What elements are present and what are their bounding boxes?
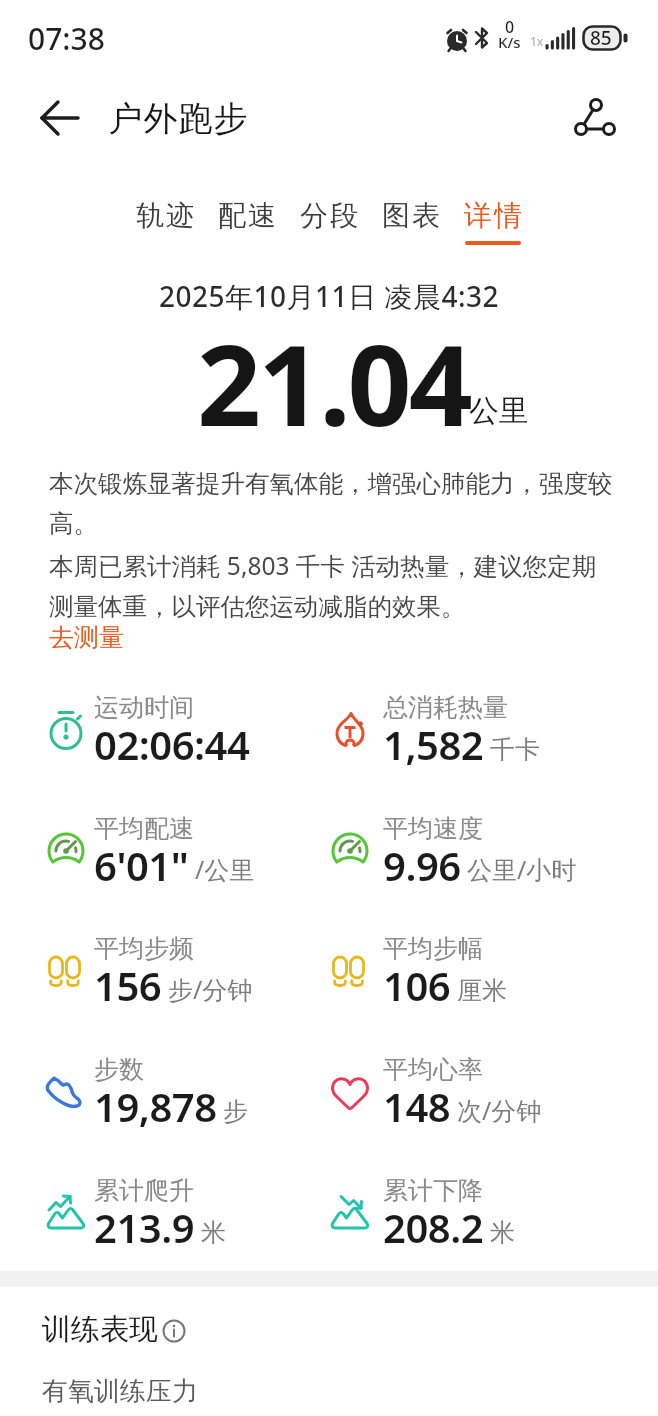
staticText: 平均步幅 bbox=[383, 933, 483, 964]
staticText: 6'01" bbox=[94, 838, 189, 892]
staticText: 步 bbox=[223, 1096, 248, 1127]
staticText: 步/分钟 bbox=[168, 972, 253, 1006]
staticText: 米 bbox=[490, 1217, 515, 1248]
staticText: 21.04 bbox=[197, 306, 470, 459]
staticText: 厘米 bbox=[457, 975, 507, 1006]
staticText: 平均步频 bbox=[94, 933, 194, 964]
button[interactable]: 去测量 bbox=[49, 622, 124, 653]
staticText: 2025年10月11日 凌晨4:32 bbox=[159, 277, 500, 315]
staticText: 公里 bbox=[469, 392, 529, 430]
staticText: 分段 bbox=[299, 198, 359, 233]
button[interactable]: 轨迹 bbox=[135, 198, 195, 245]
button[interactable] bbox=[566, 90, 622, 146]
staticText: 平均速度 bbox=[383, 813, 483, 844]
staticText: 公里/小时 bbox=[467, 852, 577, 886]
staticText: 累计下降 bbox=[383, 1175, 483, 1206]
button[interactable]: 图表 bbox=[381, 198, 441, 245]
staticText: 19,878 bbox=[94, 1079, 217, 1133]
staticText: 次/分钟 bbox=[457, 1093, 542, 1127]
staticText: 本周已累计消耗 5,803 千卡 活动热量，建议您定期测量体重，以评估您运动减脂… bbox=[49, 549, 611, 622]
staticText: 平均心率 bbox=[383, 1054, 483, 1085]
staticText: 配速 bbox=[217, 198, 277, 233]
button[interactable] bbox=[161, 1318, 187, 1344]
staticText: 米 bbox=[201, 1217, 226, 1248]
staticText: /公里 bbox=[195, 852, 255, 886]
staticText: 本次锻炼显著提升有氧体能，增强心肺能力，强度较高。 bbox=[49, 468, 624, 539]
staticText: 详情 bbox=[463, 198, 523, 233]
staticText: 步数 bbox=[94, 1054, 144, 1085]
button[interactable] bbox=[30, 92, 86, 148]
staticText: 户外跑步 bbox=[108, 97, 248, 140]
staticText: 运动时间 bbox=[94, 692, 194, 723]
staticText: 有氧训练压力 bbox=[42, 1375, 198, 1408]
staticText: 1x bbox=[530, 33, 544, 49]
staticText: 148 bbox=[383, 1079, 451, 1133]
staticText: 02:06:44 bbox=[94, 717, 250, 771]
staticText: 9.96 bbox=[383, 838, 461, 892]
staticText: 平均配速 bbox=[94, 813, 194, 844]
staticText: 0 bbox=[505, 16, 515, 38]
staticText: 轨迹 bbox=[135, 198, 195, 233]
staticText: 85 bbox=[590, 25, 612, 51]
button[interactable]: 配速 bbox=[217, 198, 277, 245]
staticText: 训练表现 bbox=[42, 1311, 158, 1348]
staticText: K/s bbox=[498, 32, 521, 52]
staticText: 总消耗热量 bbox=[383, 692, 508, 723]
staticText: 208.2 bbox=[383, 1200, 484, 1254]
staticText: 156 bbox=[94, 958, 162, 1012]
staticText: 106 bbox=[383, 958, 451, 1012]
staticText: 213.9 bbox=[94, 1200, 195, 1254]
staticText: 1,582 bbox=[383, 717, 484, 771]
button[interactable]: 分段 bbox=[299, 198, 359, 245]
staticText: 07:38 bbox=[28, 18, 105, 59]
staticText: 图表 bbox=[381, 198, 441, 233]
staticText: 累计爬升 bbox=[94, 1175, 194, 1206]
button[interactable]: 详情 bbox=[463, 198, 523, 245]
staticText: 千卡 bbox=[490, 734, 540, 765]
staticText: 去测量 bbox=[49, 622, 124, 653]
